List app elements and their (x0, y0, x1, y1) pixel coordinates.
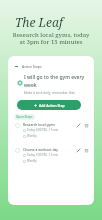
button[interactable]: Choose a workout day (8, 147, 94, 163)
staticText: Weekly (27, 134, 37, 138)
staticText: Open Steps (16, 115, 33, 119)
other: Delete step (84, 123, 89, 128)
staticText: Today 3:00 PM - 15 min (27, 128, 59, 132)
staticText: Weekly (27, 159, 37, 163)
button[interactable]: Add Action Step (17, 100, 81, 110)
staticText: Add Action Step (39, 103, 65, 108)
staticText: Active Steps (22, 64, 42, 69)
staticText: Make it stick daily, remember that (24, 91, 75, 95)
button[interactable]: Research local gyms (8, 122, 94, 138)
other: Edit step (76, 148, 81, 153)
staticText: Research local gyms (23, 122, 55, 126)
other: Edit step (76, 123, 81, 128)
staticText: Research local gyms, today at 3pm for 15… (0, 31, 102, 46)
button[interactable]: Open Steps (14, 114, 35, 120)
staticText: Today 3:00 PM - 15 min (27, 153, 59, 157)
other: Delete step (84, 148, 89, 153)
staticText: I will go to the gym every week (24, 74, 85, 88)
staticText: Choose a workout day (23, 147, 59, 151)
staticText: The Leaf (15, 14, 63, 30)
